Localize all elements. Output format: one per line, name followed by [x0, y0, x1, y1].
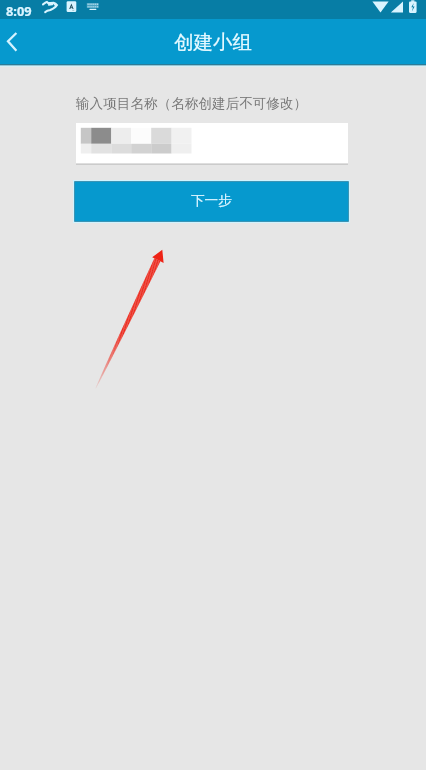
staticText: 输入项目名称（名称创建后不可修改）: [76, 95, 308, 112]
button[interactable]: Back: [0, 19, 45, 64]
staticText: 8:09: [6, 2, 32, 19]
staticText: 创建小组: [0, 30, 426, 54]
staticText: 下一步: [191, 192, 232, 209]
button[interactable]: 下一步: [73, 180, 350, 223]
button[interactable]: [76, 123, 348, 165]
